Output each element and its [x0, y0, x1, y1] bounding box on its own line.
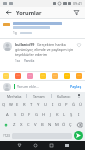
- staticText: G: [35, 112, 39, 118]
- button[interactable]: Yanıtla: [24, 59, 35, 63]
- staticText: teşekkürler ederim: [15, 52, 48, 57]
- button[interactable]: Like: [76, 42, 82, 48]
- button[interactable]: H: [40, 110, 47, 120]
- button[interactable]: Merhaba: [3, 92, 26, 100]
- staticText: A: [6, 112, 9, 118]
- staticText: 1g: [13, 31, 17, 35]
- button[interactable]: R: [21, 100, 28, 110]
- staticText: 1sa: [15, 59, 21, 63]
- button[interactable]: Q: [1, 100, 7, 110]
- button[interactable]: Home: [27, 141, 43, 150]
- button[interactable]: Emoji: [15, 73, 21, 79]
- button[interactable]: Emoji: [27, 73, 33, 79]
- button[interactable]: Paylaş: [70, 84, 82, 89]
- staticText: Yorum ekle...: [17, 84, 39, 89]
- button[interactable]: Y: [35, 100, 42, 110]
- button[interactable]: Ö: [60, 120, 67, 130]
- button[interactable]: S: [11, 110, 19, 120]
- button[interactable]: Shift: [1, 120, 11, 130]
- button[interactable]: Ş: [68, 110, 75, 120]
- staticText: Ç: [69, 122, 72, 128]
- button[interactable]: K: [54, 110, 61, 120]
- button[interactable]: Emoji: [3, 73, 9, 79]
- button[interactable]: V: [32, 120, 39, 130]
- button[interactable]: A: [3, 110, 11, 120]
- button[interactable]: B: [39, 120, 46, 130]
- staticText: Tamam: [33, 94, 45, 99]
- staticText: H: [42, 112, 46, 118]
- staticText: Yorumlar: [16, 9, 42, 16]
- staticText: I: [52, 102, 54, 108]
- button[interactable]: Yorum ekle...: [14, 84, 70, 89]
- staticText: kullanici99: [15, 42, 35, 47]
- button[interactable]: Emoji: [64, 73, 70, 79]
- button[interactable]: Emoji: [52, 73, 58, 79]
- staticText: 09:41: [73, 1, 82, 6]
- button[interactable]: 1g: [0, 19, 85, 38]
- button[interactable]: ?123: [2, 131, 11, 140]
- staticText: I: [78, 112, 80, 118]
- staticText: P: [65, 102, 68, 108]
- button[interactable]: D: [19, 110, 26, 120]
- button[interactable]: Tamam: [27, 92, 51, 100]
- button[interactable]: P: [63, 100, 70, 110]
- button[interactable]: Z: [11, 120, 18, 130]
- button[interactable]: U: [42, 100, 49, 110]
- button[interactable]: Ü: [77, 100, 84, 110]
- staticText: Q: [2, 102, 6, 108]
- staticText: Ğ: [72, 102, 76, 108]
- button[interactable]: Emoji: [76, 73, 82, 79]
- staticText: Y: [37, 102, 40, 108]
- button[interactable]: Keyboard: [59, 141, 75, 150]
- button[interactable]: N: [46, 120, 53, 130]
- staticText: B: [41, 122, 44, 128]
- staticText: U: [44, 102, 48, 108]
- staticText: S: [14, 112, 17, 118]
- staticText: ?123: [3, 134, 10, 138]
- staticText: görünüyor, elimde ve paylaşım için: [15, 47, 74, 52]
- button[interactable]: E: [14, 100, 21, 110]
- staticText: T: [30, 102, 33, 108]
- button[interactable]: J: [47, 110, 54, 120]
- button[interactable]: C: [25, 120, 32, 130]
- staticText: L: [63, 112, 66, 118]
- staticText: Z: [13, 122, 16, 128]
- button[interactable]: W: [7, 100, 14, 110]
- staticText: N: [48, 122, 52, 128]
- staticText: Ü: [79, 102, 83, 108]
- button[interactable]: O: [56, 100, 63, 110]
- button[interactable]: L: [61, 110, 68, 120]
- button[interactable]: Ç: [67, 120, 74, 130]
- button[interactable]: X: [18, 120, 25, 130]
- staticText: C: [27, 122, 30, 128]
- staticText: W: [9, 102, 13, 108]
- staticText: X: [20, 122, 23, 128]
- staticText: Merhaba: [7, 94, 22, 99]
- button[interactable]: M: [53, 120, 60, 130]
- button[interactable]: G: [33, 110, 40, 120]
- button[interactable]: Filter: [72, 8, 81, 17]
- button[interactable]: Backspace: [74, 120, 84, 130]
- staticText: F: [28, 112, 31, 118]
- button[interactable]: Send: [74, 131, 83, 140]
- staticText: Kullanıcı: [57, 94, 71, 99]
- button[interactable]: Ğ: [70, 100, 77, 110]
- button[interactable]: Back: [11, 141, 27, 150]
- button[interactable]: Emoji: [40, 73, 46, 79]
- button[interactable]: Back: [4, 8, 13, 17]
- button[interactable]: kullanici99: [0, 39, 85, 66]
- button[interactable]: Voice input: [76, 92, 82, 100]
- staticText: K: [56, 112, 59, 118]
- staticText: R: [23, 102, 26, 108]
- staticText: V: [34, 122, 37, 128]
- button[interactable]: I: [49, 100, 56, 110]
- button[interactable]: Recents: [43, 141, 59, 150]
- button[interactable]: F: [26, 110, 33, 120]
- button[interactable]: T: [28, 100, 35, 110]
- button[interactable]: Kullanıcı: [52, 92, 76, 100]
- staticText: M: [55, 122, 59, 128]
- button[interactable]: I: [75, 110, 82, 120]
- staticText: Ö: [62, 122, 66, 128]
- staticText: O: [58, 102, 62, 108]
